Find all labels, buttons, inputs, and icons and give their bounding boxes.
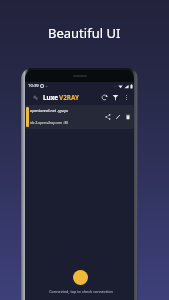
button[interactable]: Menu xyxy=(31,93,40,102)
button[interactable]: Connect xyxy=(73,270,88,285)
button[interactable]: Edit xyxy=(113,112,123,122)
staticText: Beautiful UI xyxy=(48,24,121,42)
button[interactable]: Share xyxy=(103,112,113,122)
button[interactable]: More options xyxy=(121,92,132,103)
staticText: 10:39 xyxy=(28,83,39,89)
staticText: idv-3.opersv2ray.com : 80 xyxy=(30,121,69,125)
button[interactable]: Filter xyxy=(110,92,121,103)
staticText: Connected, tap to check connection xyxy=(49,289,113,294)
staticText: opentunnel.net -yyuyu xyxy=(30,108,69,113)
button[interactable]: Refresh xyxy=(99,92,110,103)
button[interactable]: opentunnel.net -yyuyu xyxy=(25,105,134,129)
button[interactable]: Delete xyxy=(123,112,133,122)
staticText: Luxe xyxy=(43,93,59,102)
staticText: V2RAY xyxy=(59,93,80,102)
